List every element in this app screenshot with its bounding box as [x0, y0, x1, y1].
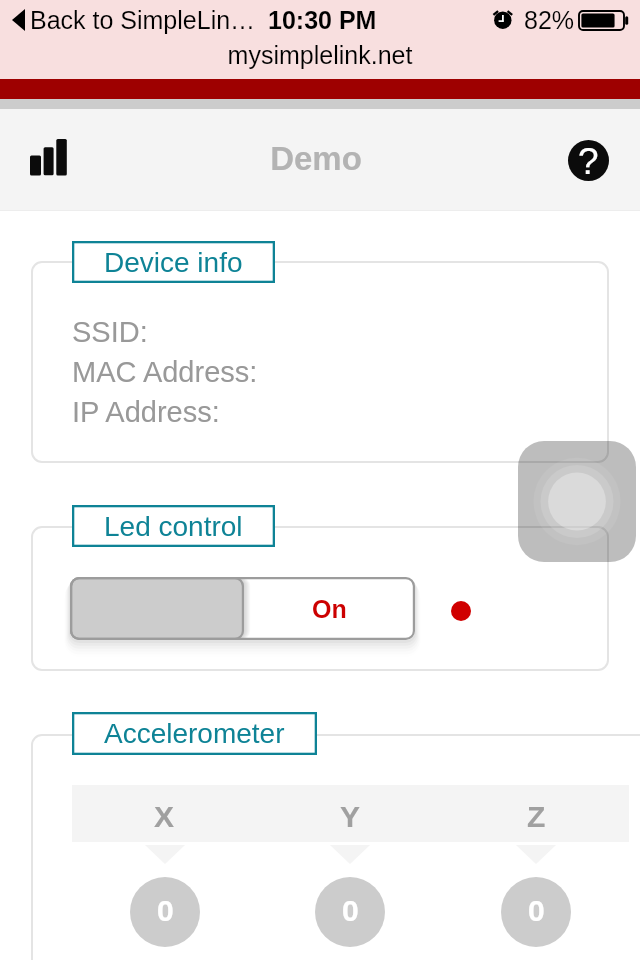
- button[interactable]: Help: [568, 140, 609, 181]
- staticText: 10:30 PM: [268, 6, 377, 34]
- staticText: Device info: [104, 247, 243, 278]
- button[interactable]: On: [70, 577, 415, 640]
- staticText: 0: [342, 894, 359, 928]
- staticText: Accelerometer: [104, 718, 285, 749]
- staticText: MAC Address:: [72, 356, 258, 388]
- staticText: Back to SimpleLin…: [30, 6, 256, 34]
- staticText: SSID:: [72, 316, 148, 348]
- staticText: X: [154, 800, 175, 834]
- button[interactable]: AssistiveTouch: [518, 441, 636, 562]
- staticText: 0: [157, 894, 174, 928]
- staticText: 82%: [524, 6, 575, 34]
- staticText: Led control: [104, 511, 243, 542]
- button[interactable]: Back to SimpleLin…: [10, 6, 249, 36]
- button[interactable]: Signal strength: [18, 126, 78, 192]
- staticText: mysimplelink.net: [0, 41, 640, 69]
- staticText: Y: [340, 800, 361, 834]
- staticText: Z: [527, 800, 546, 834]
- staticText: 0: [528, 894, 545, 928]
- staticText: IP Address:: [72, 396, 220, 428]
- staticText: On: [312, 595, 347, 623]
- staticText: ?: [578, 141, 599, 181]
- staticText: Demo: [0, 140, 636, 177]
